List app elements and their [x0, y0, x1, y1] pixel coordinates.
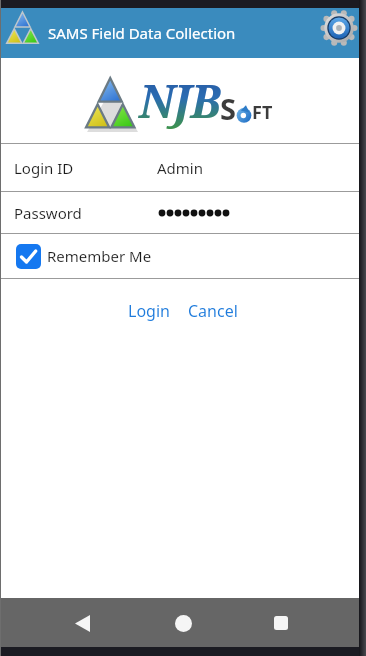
button[interactable] — [167, 607, 199, 639]
staticText: Cancel — [188, 300, 238, 322]
button[interactable]: Cancel — [188, 300, 238, 322]
staticText: Login — [128, 300, 170, 322]
button[interactable] — [265, 607, 297, 639]
button[interactable]: Login ID — [0, 144, 366, 191]
staticText: SAMS Field Data Collection — [48, 23, 236, 43]
staticText: Login ID — [14, 158, 74, 178]
button[interactable]: Password — [0, 192, 366, 233]
button[interactable]: Login — [128, 300, 170, 322]
staticText: Remember Me — [47, 246, 152, 266]
staticText: S — [220, 89, 236, 128]
button[interactable] — [66, 607, 98, 639]
staticText: NJB — [139, 70, 220, 131]
staticText: FT — [252, 100, 273, 125]
staticText: Password — [14, 203, 82, 223]
button[interactable]: Remember Me — [0, 234, 366, 278]
button[interactable] — [321, 10, 357, 46]
staticText: Admin — [157, 158, 203, 178]
